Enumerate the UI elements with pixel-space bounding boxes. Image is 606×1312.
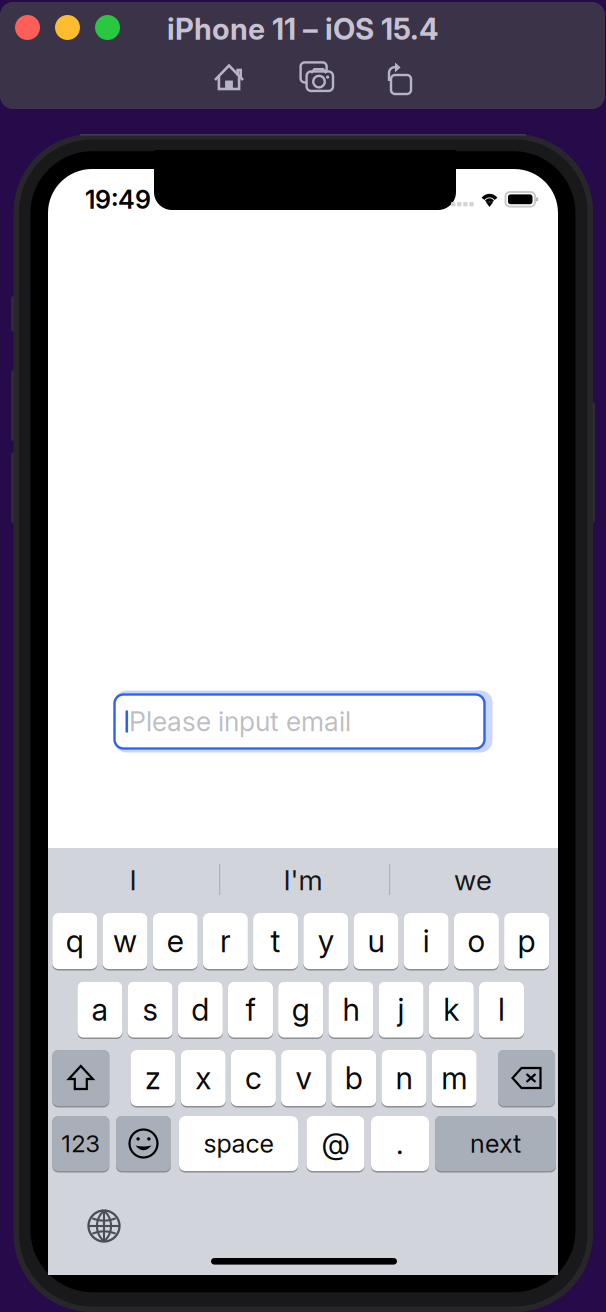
staticText: s (143, 991, 158, 1028)
staticText: a (91, 991, 108, 1028)
staticText: w (113, 923, 137, 959)
button[interactable]: d (178, 980, 223, 1038)
staticText: d (191, 991, 209, 1028)
staticText: u (367, 923, 384, 959)
button[interactable]: k (429, 980, 474, 1038)
staticText: 123 (61, 1129, 100, 1158)
button[interactable]: Please input email (114, 690, 492, 752)
button[interactable]: v (281, 1049, 326, 1107)
button[interactable]: h (328, 980, 373, 1038)
staticText: y (318, 923, 334, 959)
button[interactable]: I'm (218, 848, 388, 912)
button[interactable]: next (435, 1115, 556, 1172)
staticText: h (342, 991, 359, 1028)
button[interactable]: p (504, 912, 549, 970)
button[interactable]: q (52, 912, 97, 970)
button[interactable]: Delete (498, 1049, 555, 1107)
staticText: b (345, 1060, 363, 1096)
button[interactable]: j (379, 980, 424, 1038)
button[interactable]: o (454, 912, 499, 970)
button[interactable]: Home (207, 57, 251, 97)
staticText: Please input email (129, 706, 351, 737)
button[interactable]: e (153, 912, 198, 970)
staticText: e (167, 923, 184, 959)
staticText: m (441, 1060, 467, 1096)
staticText: @ (321, 1126, 349, 1161)
button[interactable]: I (48, 848, 218, 912)
staticText: c (245, 1060, 262, 1096)
staticText: n (395, 1060, 412, 1096)
staticText: p (518, 923, 536, 959)
button[interactable]: u (353, 912, 398, 970)
staticText: we (454, 863, 492, 896)
staticText: t (271, 923, 281, 959)
button[interactable]: Rotate (373, 57, 417, 97)
staticText: g (292, 991, 310, 1028)
staticText: f (245, 991, 255, 1028)
staticText: next (470, 1129, 521, 1158)
button[interactable]: 123 (52, 1115, 109, 1172)
staticText: x (195, 1060, 211, 1096)
button[interactable]: a (77, 980, 122, 1038)
button[interactable]: Next keyboard (82, 1204, 126, 1248)
staticText: l (498, 991, 505, 1028)
staticText: q (66, 923, 84, 959)
staticText: j (398, 991, 405, 1028)
button[interactable]: n (381, 1049, 426, 1107)
staticText: . (396, 1126, 404, 1161)
staticText: z (145, 1060, 161, 1096)
button[interactable]: . (371, 1115, 429, 1172)
button[interactable]: we (388, 848, 558, 912)
staticText: I (129, 863, 136, 896)
button[interactable]: c (231, 1049, 276, 1107)
staticText: k (443, 991, 459, 1028)
button[interactable]: f (228, 980, 273, 1038)
button[interactable]: b (331, 1049, 376, 1107)
button[interactable]: s (128, 980, 173, 1038)
button[interactable]: m (432, 1049, 477, 1107)
button[interactable]: Emoji (116, 1115, 171, 1172)
button[interactable]: w (102, 912, 147, 970)
button[interactable]: x (181, 1049, 226, 1107)
button[interactable]: r (203, 912, 248, 970)
staticText: v (296, 1060, 312, 1096)
staticText: r (220, 923, 231, 959)
staticText: i (423, 923, 430, 959)
button[interactable]: z (130, 1049, 175, 1107)
button[interactable]: i (404, 912, 449, 970)
button[interactable]: t (253, 912, 298, 970)
staticText: 19:49 (85, 185, 151, 214)
button[interactable]: Shift (52, 1049, 109, 1107)
button[interactable]: space (179, 1115, 298, 1172)
button[interactable]: @ (306, 1115, 364, 1172)
staticText: I'm (283, 863, 322, 896)
staticText: o (467, 923, 485, 959)
staticText: space (203, 1129, 273, 1158)
staticText: iPhone 11 – iOS 15.4 (167, 12, 439, 46)
button[interactable]: l (479, 980, 524, 1038)
button[interactable]: g (278, 980, 323, 1038)
button[interactable]: Screenshot (295, 57, 339, 97)
button[interactable]: y (303, 912, 348, 970)
